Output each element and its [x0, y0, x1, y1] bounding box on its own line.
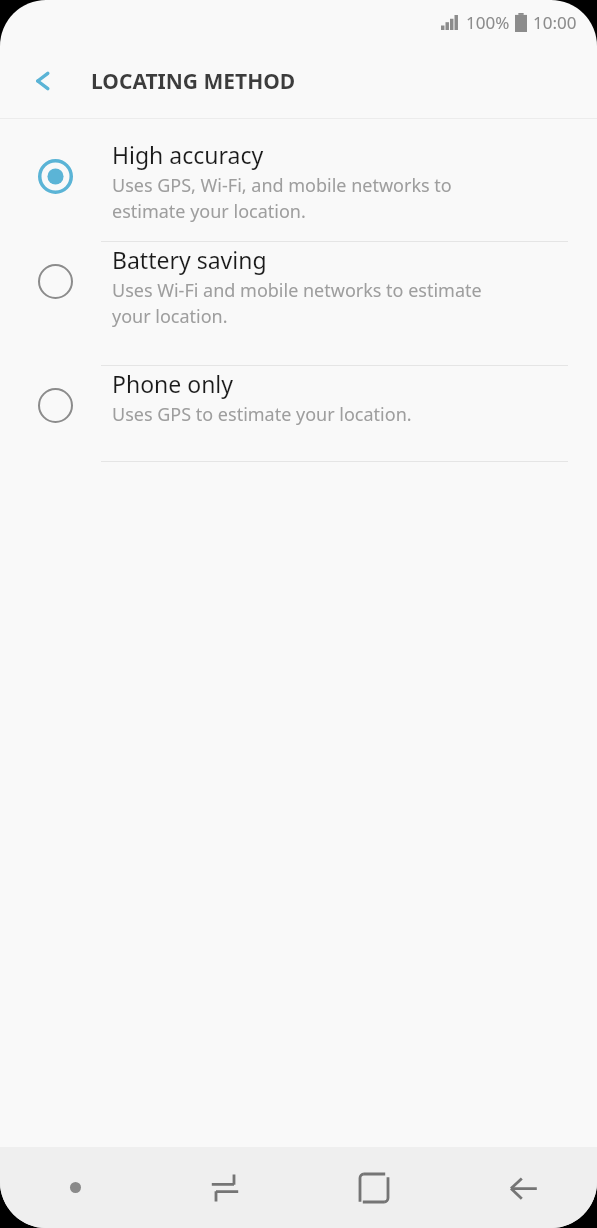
staticText: High accuracy: [112, 139, 264, 170]
button[interactable]: Phone only: [0, 366, 597, 462]
staticText: Battery saving: [112, 244, 267, 275]
button[interactable]: Navigate up: [14, 52, 72, 110]
staticText: Phone only: [112, 368, 234, 399]
button[interactable]: Recent apps: [150, 1147, 299, 1228]
button[interactable]: Keyboard toggle: [0, 1147, 150, 1228]
button[interactable]: Back: [448, 1147, 597, 1228]
staticText: Uses GPS, Wi-Fi, and mobile networks to …: [112, 173, 452, 224]
button[interactable]: Home: [299, 1147, 448, 1228]
button[interactable]: Battery saving: [0, 242, 597, 366]
staticText: Uses GPS to estimate your location.: [112, 402, 412, 427]
staticText: LOCATING METHOD: [91, 67, 296, 96]
staticText: 10:00: [533, 11, 577, 34]
staticText: 100%: [466, 11, 510, 34]
staticText: Uses Wi-Fi and mobile networks to estima…: [112, 278, 482, 329]
button[interactable]: High accuracy: [0, 137, 597, 242]
